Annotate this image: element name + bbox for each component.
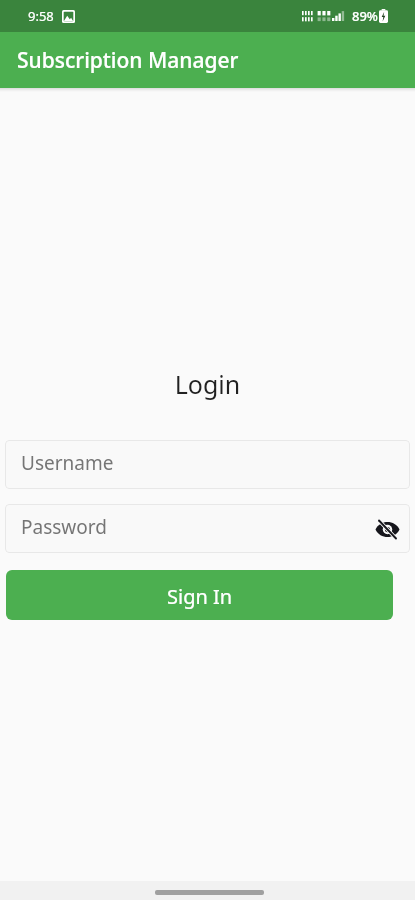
staticText: 9:58 xyxy=(28,7,54,25)
button[interactable]: Username xyxy=(5,440,410,489)
button[interactable]: Sign In xyxy=(6,570,393,620)
staticText: 89% xyxy=(352,7,378,25)
staticText: Login xyxy=(0,367,415,401)
button[interactable]: Password xyxy=(5,504,410,553)
staticText: Sign In xyxy=(167,583,233,610)
staticText: Username xyxy=(21,450,114,476)
staticText: Subscription Manager xyxy=(17,46,239,75)
staticText: Password xyxy=(21,514,107,540)
button[interactable]: Toggle password visibility xyxy=(373,515,401,543)
